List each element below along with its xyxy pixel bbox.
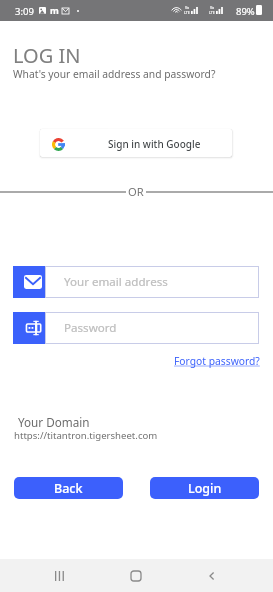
button[interactable]: Your email address <box>13 266 259 298</box>
button[interactable]: Forgot password? <box>174 354 260 368</box>
staticText: Forgot password? <box>174 354 260 368</box>
staticText: LTE <box>209 10 215 15</box>
staticText: Password <box>64 320 117 336</box>
staticText: m <box>50 4 59 16</box>
staticText: Sign in with Google <box>108 137 201 151</box>
button[interactable]: Password <box>13 312 259 344</box>
button[interactable]: Back <box>195 559 229 592</box>
staticText: 3:09 <box>15 5 34 18</box>
staticText: Vo <box>185 5 190 10</box>
staticText: OR <box>128 184 144 199</box>
button[interactable]: Sign in with Google <box>40 129 232 157</box>
staticText: Your email address <box>64 274 168 290</box>
staticText: LOG IN <box>13 42 81 69</box>
button[interactable]: Recents <box>43 559 77 592</box>
staticText: LTE <box>184 10 190 15</box>
button[interactable]: Home <box>119 559 153 592</box>
staticText: Your Domain <box>18 414 90 430</box>
button[interactable]: Login <box>150 477 259 499</box>
staticText: Vo <box>210 5 215 10</box>
staticText: What's your email address and password? <box>13 67 216 81</box>
staticText: https://titantron.tigersheet.com <box>14 429 158 442</box>
staticText: 89% <box>236 5 255 18</box>
button[interactable]: Back <box>14 477 123 499</box>
staticText: Back <box>54 480 83 497</box>
staticText: Login <box>188 480 222 497</box>
